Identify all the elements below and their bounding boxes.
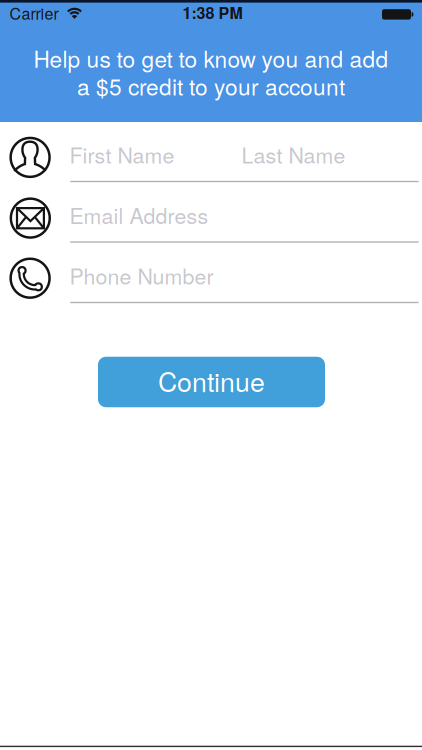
staticText: Phone Number	[69, 260, 213, 290]
staticText: Help us to get to know you and add	[33, 42, 388, 74]
button[interactable]: Phone Number	[69, 261, 269, 289]
staticText: Carrier	[9, 2, 58, 24]
staticText: First Name	[69, 139, 174, 169]
staticText: a $5 credit to your account	[77, 70, 345, 102]
staticText: Continue	[158, 362, 265, 399]
button[interactable]: Email Address	[69, 201, 269, 229]
staticText: Last Name	[241, 139, 345, 169]
staticText: Email Address	[69, 200, 208, 230]
staticText: 1:38 PM	[182, 1, 242, 23]
button[interactable]: Last Name	[241, 140, 401, 168]
button[interactable]: Continue	[98, 357, 325, 407]
button[interactable]: First Name	[69, 140, 229, 168]
